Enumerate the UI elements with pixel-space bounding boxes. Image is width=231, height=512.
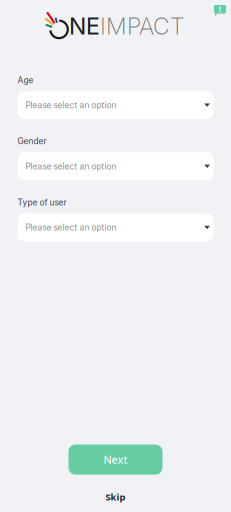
- staticText: Type of user: [17, 197, 66, 207]
- staticText: Please select an option: [25, 100, 116, 110]
- button[interactable]: Skip: [87, 486, 143, 508]
- button[interactable]: Messages: [214, 5, 226, 17]
- staticText: IMPACT: [100, 12, 184, 40]
- staticText: NE: [69, 12, 100, 40]
- staticText: Age: [17, 75, 33, 85]
- staticText: Gender: [17, 136, 46, 146]
- button[interactable]: Please select an option: [17, 213, 213, 241]
- staticText: Next: [103, 452, 127, 467]
- button[interactable]: Next: [68, 445, 162, 475]
- staticText: Please select an option: [25, 222, 116, 233]
- staticText: Please select an option: [25, 161, 116, 171]
- button[interactable]: Please select an option: [17, 91, 213, 119]
- button[interactable]: Please select an option: [17, 152, 213, 180]
- staticText: Skip: [105, 491, 125, 503]
